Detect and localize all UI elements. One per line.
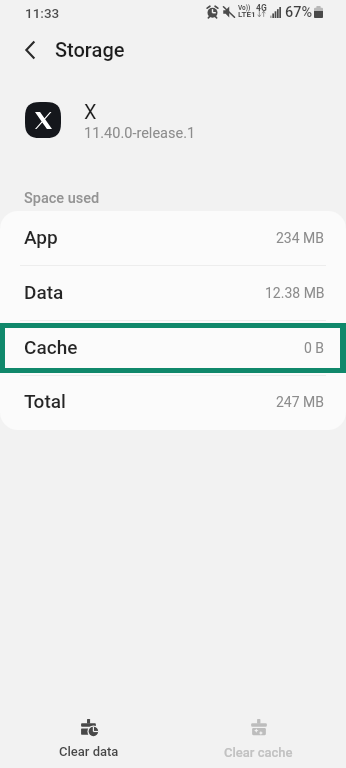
button[interactable]: Clear cache <box>188 701 328 768</box>
staticText: 11.40.0-release.1 <box>84 125 196 142</box>
staticText: Vo)) <box>238 4 251 12</box>
staticText: Storage <box>55 38 125 61</box>
staticText: 67% <box>285 4 313 21</box>
staticText: Clear data <box>59 744 119 759</box>
staticText: 12.38 MB <box>265 285 325 301</box>
staticText: X <box>84 100 97 123</box>
staticText: 234 MB <box>276 230 325 246</box>
staticText: Clear cache <box>224 745 293 760</box>
staticText: Data <box>24 281 64 303</box>
staticText: App <box>24 226 58 248</box>
staticText: 4G <box>256 3 267 13</box>
staticText: Space used <box>24 190 100 207</box>
staticText: 0 B <box>304 340 325 356</box>
button[interactable]: App <box>0 211 346 266</box>
button[interactable]: Total <box>0 376 346 430</box>
button[interactable]: Clear data <box>19 701 159 768</box>
button[interactable]: Data <box>0 266 346 321</box>
staticText: 247 MB <box>276 394 325 410</box>
staticText: Cache <box>24 336 78 358</box>
staticText: Total <box>24 390 66 412</box>
button[interactable]: Cache <box>0 321 346 376</box>
button[interactable]: Navigate up <box>10 30 50 70</box>
staticText: 11:33 <box>25 5 60 21</box>
staticText: LTE1 <box>238 10 256 19</box>
